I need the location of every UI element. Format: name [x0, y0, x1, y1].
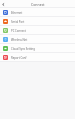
staticText: Wireless Net — [11, 38, 28, 42]
staticText: Report Conf — [11, 56, 27, 60]
staticText: Serial Port — [11, 20, 25, 24]
button[interactable]: Serial Port — [0, 17, 75, 26]
staticText: Connect — [31, 2, 45, 7]
staticText: PC Connect — [11, 29, 26, 33]
button[interactable]: Back — [0, 1, 7, 8]
button[interactable]: Ethernet — [0, 8, 75, 17]
staticText: Cloud Sync Setting — [11, 47, 36, 51]
button[interactable]: Report Conf — [0, 53, 75, 62]
button[interactable]: Cloud Sync Setting — [0, 44, 75, 53]
staticText: Ethernet — [11, 11, 23, 15]
button[interactable]: Wireless Net — [0, 35, 75, 44]
button[interactable]: PC Connect — [0, 26, 75, 35]
